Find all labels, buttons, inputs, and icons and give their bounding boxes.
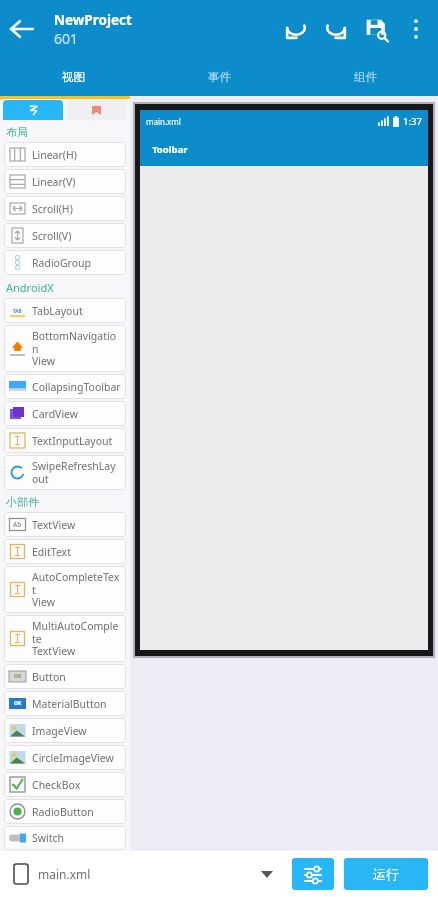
staticText: 布局 — [6, 125, 28, 139]
button[interactable]: 运行 — [344, 858, 428, 890]
button[interactable]: main.xml — [10, 860, 95, 888]
staticText: Linear(V) — [32, 175, 76, 189]
staticText: Ab — [13, 520, 22, 529]
button[interactable]: 事件 — [146, 58, 292, 96]
staticText: Toolbar — [152, 143, 188, 156]
staticText: AndroidX — [6, 280, 54, 295]
button[interactable]: SwipeRefreshLay out — [4, 455, 126, 490]
button[interactable]: Components — [3, 100, 63, 120]
staticText: RadioGroup — [32, 256, 92, 270]
staticText: Switch — [32, 831, 65, 845]
button[interactable]: CardView — [4, 401, 126, 426]
staticText: MultiAutoComplete TextView — [32, 619, 121, 658]
button[interactable]: 视图 — [0, 58, 146, 96]
staticText: CheckBox — [32, 778, 81, 792]
staticText: Linear(H) — [32, 148, 77, 162]
staticText: 601 — [54, 29, 79, 48]
button[interactable]: AutoCompleteText View — [4, 566, 126, 613]
staticText: TextView — [32, 518, 76, 532]
button[interactable]: Back — [2, 9, 42, 49]
button[interactable]: TextInputLayout — [4, 428, 126, 453]
staticText: OK — [14, 673, 22, 680]
staticText: EditText — [32, 545, 71, 559]
button[interactable]: Settings — [292, 858, 334, 890]
staticText: main.xml — [146, 116, 181, 127]
button[interactable]: Save — [356, 9, 396, 49]
button[interactable]: OK — [4, 664, 126, 689]
staticText: Button — [32, 670, 66, 684]
button[interactable]: Undo — [276, 9, 316, 49]
button[interactable]: Dropdown — [254, 861, 280, 887]
staticText: SwipeRefreshLay out — [32, 459, 116, 486]
button[interactable]: EditText — [4, 539, 126, 564]
staticText: 视图 — [62, 70, 85, 84]
staticText: CircleImageView — [32, 751, 114, 765]
button[interactable]: Scroll(H) — [4, 196, 126, 221]
button[interactable]: RadioButton — [4, 799, 126, 824]
staticText: CardView — [32, 407, 79, 421]
staticText: 组件 — [354, 70, 377, 84]
staticText: RadioButton — [32, 805, 94, 819]
button[interactable]: CheckBox — [4, 772, 126, 797]
staticText: 运行 — [373, 866, 399, 882]
button[interactable]: CollapsingToolbar — [4, 374, 126, 399]
button[interactable]: OK — [4, 691, 126, 716]
button[interactable]: Ab — [4, 512, 126, 537]
staticText: NewProject — [54, 11, 132, 29]
button[interactable]: Scroll(V) — [4, 223, 126, 248]
staticText: Scroll(V) — [32, 229, 72, 243]
button[interactable]: Favorites — [66, 100, 127, 120]
button[interactable]: TAB — [4, 298, 126, 323]
button[interactable]: 组件 — [292, 58, 438, 96]
button[interactable]: Linear(V) — [4, 169, 126, 194]
staticText: TextInputLayout — [32, 434, 113, 448]
staticText: CollapsingToolbar — [32, 380, 121, 394]
staticText: OK — [14, 700, 22, 707]
staticText: BottomNavigation View — [32, 329, 121, 368]
staticText: ImageView — [32, 724, 87, 738]
button[interactable]: CircleImageView — [4, 745, 126, 770]
button[interactable]: ImageView — [4, 718, 126, 743]
staticText: 1:37 — [403, 115, 422, 128]
button[interactable]: RadioGroup — [4, 250, 126, 275]
button[interactable]: More options — [396, 9, 436, 49]
button[interactable]: Switch — [4, 826, 126, 850]
staticText: TabLayout — [32, 304, 83, 318]
button[interactable]: Linear(H) — [4, 142, 126, 167]
button[interactable]: Redo — [316, 9, 356, 49]
button[interactable]: BottomNavigation View — [4, 325, 126, 372]
staticText: 小部件 — [6, 495, 39, 509]
staticText: Scroll(H) — [32, 202, 73, 216]
staticText: main.xml — [38, 866, 91, 882]
button[interactable]: MultiAutoComplete TextView — [4, 615, 126, 662]
staticText: 事件 — [208, 70, 231, 84]
staticText: TAB — [13, 308, 22, 314]
staticText: AutoCompleteText View — [32, 570, 121, 609]
staticText: MaterialButton — [32, 697, 107, 711]
